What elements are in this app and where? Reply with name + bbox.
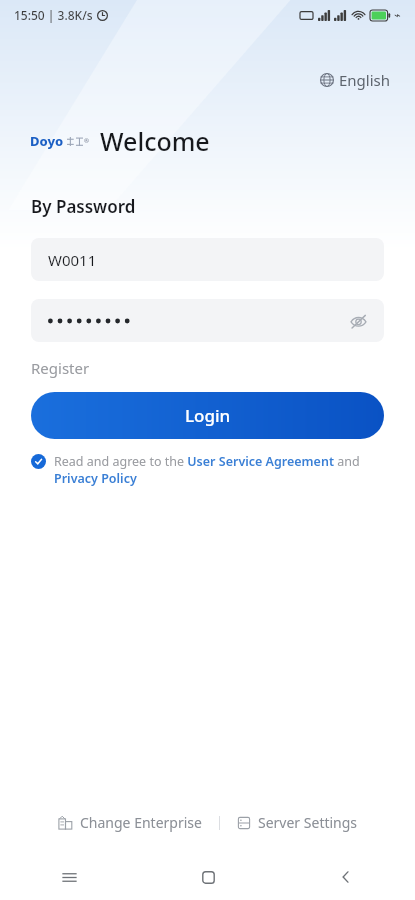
staticText: W0011	[48, 250, 97, 270]
button[interactable]: Login	[31, 392, 384, 439]
button[interactable]: Register	[25, 355, 96, 381]
button[interactable]: Server Settings	[231, 807, 364, 838]
button[interactable]: Recents	[0, 854, 139, 900]
button[interactable]: Change Enterprise	[52, 807, 208, 838]
staticText: Change Enterprise	[80, 813, 202, 832]
staticText: 15:50 | 3.8K/s	[14, 7, 93, 23]
staticText: ®	[84, 137, 89, 145]
button[interactable]: Show password	[344, 307, 372, 335]
staticText: Welcome	[100, 124, 210, 158]
staticText: English	[339, 70, 391, 90]
button[interactable]: Home	[139, 854, 277, 900]
button[interactable]: English	[312, 66, 399, 94]
staticText: Doyo	[30, 132, 64, 150]
button[interactable]: Back	[277, 854, 415, 900]
staticText: Login	[185, 404, 231, 427]
staticText: By Password	[31, 195, 136, 218]
staticText: Server Settings	[258, 813, 358, 832]
button[interactable]: Show password	[31, 299, 384, 342]
button[interactable]: Read and agree to the User Service Agree…	[31, 453, 393, 487]
staticText: Read and agree to the User Service Agree…	[54, 453, 393, 487]
staticText: ⌁	[394, 9, 401, 22]
button[interactable]: W0011	[31, 238, 384, 281]
